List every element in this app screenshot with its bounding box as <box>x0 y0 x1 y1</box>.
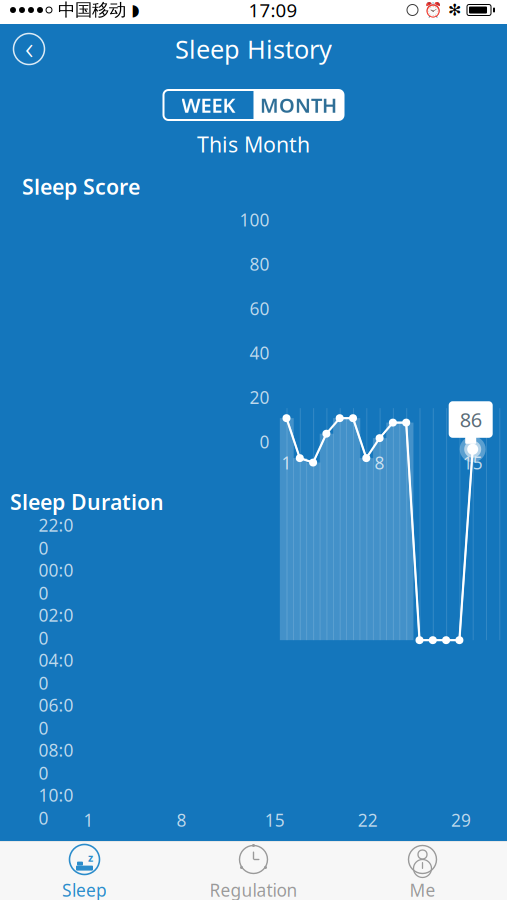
staticText: z <box>88 850 93 865</box>
staticText: 15 <box>265 808 285 831</box>
staticText: 22:00 <box>38 513 73 559</box>
staticText: 60 <box>249 297 269 320</box>
staticText: 中国移动 <box>58 0 126 21</box>
staticText: 02:00 <box>38 603 73 649</box>
staticText: ‹ <box>25 26 33 68</box>
staticText: 15 <box>463 451 483 474</box>
staticText: This Month <box>197 130 310 158</box>
button[interactable]: Me <box>338 841 507 900</box>
staticText: 06:00 <box>38 693 73 739</box>
staticText: Sleep Score <box>22 172 140 201</box>
staticText: 40 <box>249 341 269 364</box>
staticText: 00:00 <box>38 558 73 604</box>
staticText: WEEK <box>181 92 235 118</box>
staticText: 1 <box>281 451 291 474</box>
staticText: 29 <box>451 808 471 831</box>
staticText: 100 <box>239 208 269 231</box>
staticText: 8 <box>177 808 187 831</box>
staticText: ✻ <box>448 1 461 19</box>
staticText: 17:09 <box>248 0 297 22</box>
staticText: 04:00 <box>38 648 73 694</box>
staticText: Sleep <box>62 878 107 900</box>
staticText: 22 <box>358 808 378 831</box>
staticText: 86 <box>460 406 482 433</box>
button[interactable]: Back <box>7 27 51 71</box>
staticText: Regulation <box>209 878 297 900</box>
staticText: Sleep History <box>175 32 332 66</box>
staticText: ◗ <box>131 1 139 19</box>
staticText: 8 <box>375 451 385 474</box>
button[interactable]: MONTH <box>253 90 343 120</box>
button[interactable]: Regulation <box>169 841 338 900</box>
button[interactable]: z <box>0 841 169 900</box>
staticText: 0 <box>259 430 269 453</box>
staticText: 08:00 <box>38 738 73 784</box>
staticText: 20 <box>249 386 269 409</box>
staticText: ⏰ <box>424 2 442 18</box>
staticText: 80 <box>249 253 269 276</box>
staticText: Me <box>409 878 435 900</box>
staticText: Sleep Duration <box>10 488 164 516</box>
button[interactable]: WEEK <box>163 90 253 120</box>
staticText: 10:00 <box>38 783 73 829</box>
staticText: MONTH <box>260 92 337 118</box>
staticText: 1 <box>83 808 93 831</box>
